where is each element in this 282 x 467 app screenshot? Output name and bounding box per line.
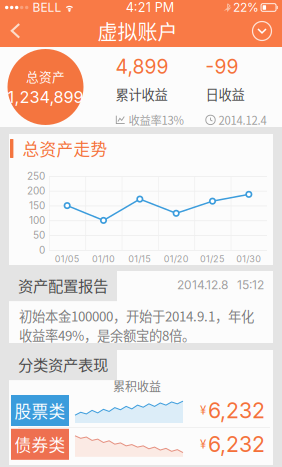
staticText: 累计收益	[115, 84, 167, 104]
button[interactable]: Back	[0, 15, 34, 47]
staticText: 股票类	[14, 398, 65, 422]
button[interactable]: 债券类	[9, 428, 273, 461]
staticText: 初始本金100000，开始于2014.9.1，年化收益率49%，是余额宝的8倍。	[19, 306, 254, 345]
staticText: 6,232	[208, 398, 265, 423]
staticText: 分类资产表现	[18, 353, 108, 375]
staticText: 总资产	[26, 67, 65, 85]
staticText: 6,232	[208, 431, 265, 457]
staticText: 2014.12.8 15:12	[177, 278, 264, 292]
staticText: 虚拟账户	[97, 16, 177, 45]
staticText: 资产配置报告	[18, 274, 108, 296]
staticText: 4:21 PM	[126, 0, 174, 15]
staticText: 1,234,899	[7, 87, 83, 107]
staticText: 01/25	[200, 253, 225, 264]
staticText: 2014.12.4	[218, 112, 266, 128]
staticText: 01/20	[164, 253, 189, 264]
staticText: ¥	[200, 404, 206, 417]
staticText: 200	[27, 185, 45, 197]
staticText: 日收益	[205, 84, 244, 104]
staticText: 01/05	[55, 253, 80, 264]
staticText: 250	[27, 170, 45, 182]
staticText: 22%	[233, 0, 259, 15]
staticText: 01/10	[92, 253, 115, 264]
button[interactable]: 股票类	[9, 394, 273, 427]
staticText: 01/30	[236, 253, 261, 264]
staticText: 债券类	[14, 432, 65, 456]
staticText: -99	[205, 55, 238, 78]
staticText: BELL	[32, 0, 61, 15]
button[interactable]: More	[241, 15, 282, 47]
staticText: 100	[29, 214, 45, 226]
staticText: 累积收益	[113, 377, 161, 395]
staticText: 收益率13%	[128, 112, 183, 128]
staticText: 总资产走势	[22, 136, 107, 160]
staticText: 150	[29, 200, 45, 212]
staticText: 4,899	[115, 55, 168, 78]
staticText: 0	[39, 244, 45, 256]
staticText: 50	[33, 229, 45, 241]
staticText: 01/15	[128, 253, 151, 264]
staticText: ¥	[200, 437, 206, 451]
